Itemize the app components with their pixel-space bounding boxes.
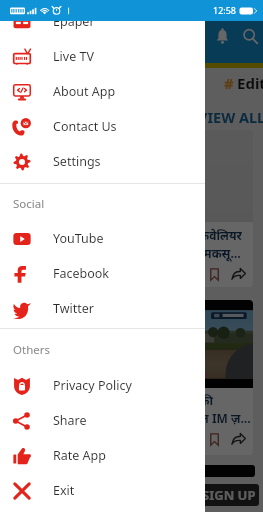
staticText: Settings	[53, 153, 101, 170]
button[interactable]: Bookmark	[207, 267, 222, 282]
staticText: Privacy Policy	[53, 377, 132, 394]
button[interactable]: भारत का कैवेलियर	[148, 130, 253, 287]
staticText: About App	[53, 83, 116, 100]
staticText: YouTube	[53, 230, 104, 247]
button[interactable]: Contact Us	[0, 109, 205, 144]
staticText: भारत का कैवेलियर	[154, 227, 242, 243]
staticText: Twitter	[53, 300, 94, 317]
button[interactable]: VIEW ALL	[198, 107, 263, 127]
button[interactable]: राजस्थान की	[148, 300, 253, 455]
button[interactable]: Facebook	[0, 256, 205, 291]
staticText: Share	[53, 412, 87, 429]
button[interactable]	[200, 465, 255, 477]
staticText: Editor's Choice	[237, 73, 263, 91]
button[interactable]: Notifications	[207, 21, 237, 51]
button[interactable]: Exit	[0, 473, 205, 508]
button[interactable]: Share	[231, 267, 246, 282]
staticText: राजस्थान की	[154, 392, 213, 408]
button[interactable]: Bookmark	[207, 432, 222, 447]
staticText: Live TV	[53, 48, 94, 65]
staticText: Epaper	[53, 13, 95, 30]
button[interactable]: Search	[235, 21, 263, 51]
button[interactable]: Share	[231, 432, 246, 447]
staticText: Others	[13, 342, 50, 358]
button[interactable]: Privacy Policy	[0, 368, 205, 403]
staticText: Exit	[53, 482, 75, 499]
staticText: Rate App	[53, 447, 106, 464]
button[interactable]: #	[224, 73, 263, 91]
staticText: Contact Us	[53, 118, 117, 135]
button[interactable]: SIGN UP	[198, 484, 259, 506]
button[interactable]: Live TV	[0, 39, 205, 74]
button[interactable]: Twitter	[0, 291, 205, 326]
button[interactable]: Epaper	[0, 4, 205, 39]
staticText: #	[224, 73, 234, 91]
button[interactable]: Settings	[0, 144, 205, 179]
button[interactable]: YouTube	[0, 221, 205, 256]
staticText: 12:58	[213, 4, 237, 16]
staticText: SIGN UP	[202, 486, 256, 504]
staticText: Facebook	[53, 265, 110, 282]
button[interactable]: Rate App	[0, 438, 205, 473]
button[interactable]: Share	[0, 403, 205, 438]
staticText: नई शुरुआत IM ज़…	[154, 410, 251, 426]
button[interactable]: About App	[0, 74, 205, 109]
staticText: समर्थ रक्षा मकसू…	[154, 245, 241, 261]
staticText: Social	[13, 196, 45, 212]
